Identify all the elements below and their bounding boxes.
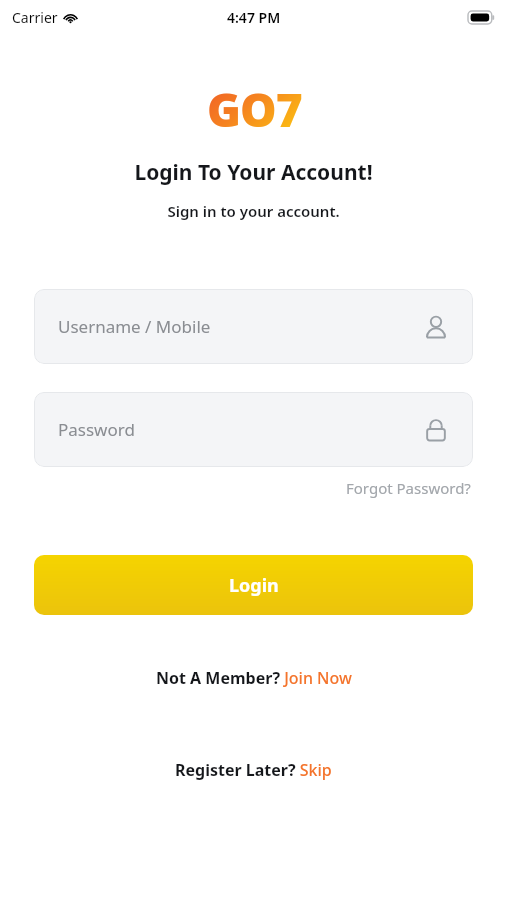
button[interactable]: Login — [34, 555, 473, 615]
staticText: Login To Your Account! — [0, 158, 507, 187]
staticText: Username / Mobile — [58, 315, 423, 338]
staticText: 4:47 PM — [227, 8, 281, 27]
button[interactable]: Forgot Password? — [344, 475, 473, 501]
staticText: GO7 — [207, 78, 302, 130]
button[interactable]: Register Later? Skip — [169, 755, 338, 785]
staticText: Password — [58, 418, 423, 441]
button[interactable]: Password — [34, 392, 473, 467]
staticText: Register Later? Skip — [175, 759, 332, 781]
other: GO7 logo — [194, 78, 314, 130]
staticText: Forgot Password? — [346, 478, 471, 498]
button[interactable]: Username — [34, 289, 473, 364]
staticText: Not A Member? Join Now — [156, 667, 352, 689]
staticText: Carrier — [12, 8, 58, 27]
staticText: Sign in to your account. — [0, 201, 507, 221]
button[interactable]: Not A Member? Join Now — [150, 663, 358, 693]
staticText: Login — [229, 573, 279, 598]
